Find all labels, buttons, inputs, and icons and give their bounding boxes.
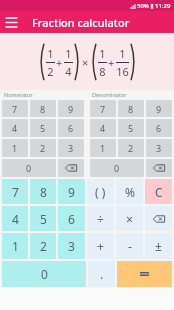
staticText: 4 xyxy=(100,122,106,134)
button[interactable]: 8 xyxy=(118,100,144,117)
staticText: 4 xyxy=(65,64,72,79)
button[interactable]: ± xyxy=(145,233,172,259)
staticText: + xyxy=(56,55,63,70)
staticText: 0 xyxy=(114,162,120,174)
staticText: ( ) xyxy=(95,184,106,200)
staticText: C xyxy=(155,184,163,200)
button[interactable]: 7 xyxy=(2,179,28,204)
staticText: 0 xyxy=(41,266,48,282)
button[interactable]: 4 xyxy=(2,119,28,137)
button[interactable]: 4 xyxy=(90,119,116,137)
staticText: 8 xyxy=(40,184,47,200)
button[interactable]: 1 xyxy=(2,139,28,157)
button[interactable]: Backspace xyxy=(58,159,84,177)
staticText: 4 xyxy=(12,211,19,227)
staticText: 4 xyxy=(12,122,18,134)
staticText: × xyxy=(126,211,133,227)
staticText: ± xyxy=(155,238,162,254)
button[interactable]: + xyxy=(87,233,114,259)
staticText: 11:29 xyxy=(155,2,171,10)
staticText: 1 xyxy=(12,238,19,254)
button[interactable]: 3 xyxy=(58,233,85,259)
staticText: Denominator xyxy=(92,91,127,98)
staticText: 5 xyxy=(128,122,134,134)
staticText: 9 xyxy=(68,184,75,200)
staticText: 1 xyxy=(47,46,54,61)
button[interactable]: 1 xyxy=(90,139,116,157)
button[interactable]: ÷ xyxy=(87,206,114,231)
button[interactable]: 0 xyxy=(2,159,56,177)
button[interactable] xyxy=(117,261,172,287)
staticText: 3 xyxy=(68,238,75,254)
button[interactable]: 1 xyxy=(2,233,28,259)
button[interactable]: 0 xyxy=(90,159,144,177)
staticText: Fraction calculator xyxy=(32,15,130,30)
staticText: 5 xyxy=(40,122,46,134)
button[interactable]: C xyxy=(145,179,172,204)
staticText: Numerator xyxy=(4,91,33,98)
button[interactable]: - xyxy=(116,233,143,259)
staticText: 5 xyxy=(40,211,47,227)
staticText: . xyxy=(100,266,104,282)
button[interactable]: 8 xyxy=(30,179,56,204)
staticText: 3 xyxy=(156,142,162,154)
staticText: - xyxy=(128,238,132,254)
button[interactable]: 9 xyxy=(146,100,172,117)
staticText: 2 xyxy=(47,64,54,79)
staticText: 1 xyxy=(99,46,106,61)
staticText: 8 xyxy=(40,103,46,115)
staticText: 9 xyxy=(68,103,74,115)
staticText: 7 xyxy=(12,184,19,200)
staticText: 16 xyxy=(116,64,129,79)
staticText: + xyxy=(108,55,115,70)
button[interactable]: × xyxy=(116,206,143,231)
button[interactable]: 1 xyxy=(0,33,174,90)
staticText: 8 xyxy=(128,103,134,115)
button[interactable]: 5 xyxy=(118,119,144,137)
button[interactable]: 3 xyxy=(146,139,172,157)
staticText: 8 xyxy=(99,64,106,79)
staticText: 3 xyxy=(68,142,74,154)
button[interactable]: 9 xyxy=(58,100,84,117)
button[interactable]: 6 xyxy=(146,119,172,137)
staticText: 1 xyxy=(65,46,72,61)
staticText: 1 xyxy=(100,142,106,154)
button[interactable]: % xyxy=(116,179,143,204)
button[interactable]: 7 xyxy=(2,100,28,117)
button[interactable]: 2 xyxy=(118,139,144,157)
button[interactable]: 6 xyxy=(58,206,85,231)
staticText: 7 xyxy=(12,103,18,115)
button[interactable]: 8 xyxy=(30,100,56,117)
staticText: 2 xyxy=(128,142,134,154)
button[interactable]: 7 xyxy=(90,100,116,117)
staticText: 9 xyxy=(156,103,162,115)
button[interactable]: 4 xyxy=(2,206,28,231)
button[interactable]: 9 xyxy=(58,179,85,204)
staticText: 7 xyxy=(100,103,106,115)
button[interactable]: 6 xyxy=(58,119,84,137)
button[interactable]: 5 xyxy=(30,206,56,231)
staticText: + xyxy=(97,238,104,254)
button[interactable]: Backspace xyxy=(146,159,172,177)
staticText: 6 xyxy=(68,122,74,134)
staticText: 6 xyxy=(68,211,75,227)
staticText: × xyxy=(82,55,89,70)
button[interactable]: 2 xyxy=(30,139,56,157)
button[interactable]: 2 xyxy=(30,233,56,259)
staticText: 50% xyxy=(137,2,149,10)
button[interactable]: 0 xyxy=(2,261,86,287)
button[interactable]: Open navigation menu xyxy=(0,11,22,33)
button[interactable]: Backspace xyxy=(145,206,172,231)
staticText: ÷ xyxy=(97,211,104,227)
staticText: 2 xyxy=(40,142,46,154)
staticText: 6 xyxy=(156,122,162,134)
button[interactable]: . xyxy=(88,261,115,287)
staticText: % xyxy=(125,184,135,200)
staticText: 0 xyxy=(26,162,32,174)
button[interactable]: 3 xyxy=(58,139,84,157)
button[interactable]: ( ) xyxy=(87,179,114,204)
staticText: 2 xyxy=(40,238,47,254)
staticText: 1 xyxy=(12,142,18,154)
button[interactable]: 5 xyxy=(30,119,56,137)
staticText: 1 xyxy=(119,46,126,61)
